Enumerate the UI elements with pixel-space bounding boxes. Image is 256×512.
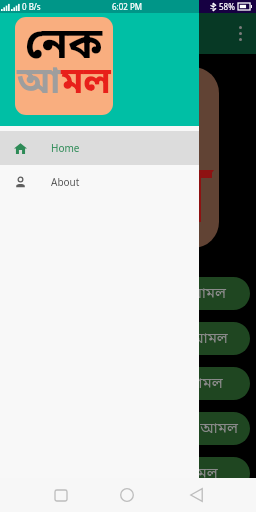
staticText: 6:02 PM <box>112 1 143 12</box>
button[interactable]: প্রতিদিনের প্রয়োজনীয় আমল <box>22 367 250 400</box>
staticText: রাতে ঘুমানোর আগের দোয়া আমল <box>34 419 238 439</box>
staticText: মল <box>61 60 111 108</box>
staticText: নেক <box>25 19 103 75</box>
button[interactable]: More options <box>232 25 248 41</box>
button[interactable]: Back <box>181 480 211 510</box>
button[interactable]: Home <box>112 480 142 510</box>
button[interactable]: নামাজের পরের দোয়া ও আমল <box>22 322 250 355</box>
button[interactable]: Home <box>0 131 199 165</box>
staticText: সকাল সন্ধ্যার জিকির ও আমল <box>47 284 226 304</box>
staticText: আ <box>17 60 61 108</box>
button[interactable]: পাঁচ ওয়াক্ত নামাজের আমল <box>22 457 250 490</box>
staticText: প্রতিদিনের প্রয়োজনীয় আমল <box>50 374 223 394</box>
button[interactable]: রাতে ঘুমানোর আগের দোয়া আমল <box>22 412 250 445</box>
staticText: About <box>51 175 80 189</box>
button[interactable]: About <box>0 165 199 199</box>
staticText: পাঁচ ওয়াক্ত নামাজের আমল <box>54 464 218 484</box>
staticText: Home <box>51 141 80 155</box>
button[interactable]: Recents <box>46 480 76 510</box>
staticText: নামাজের পরের দোয়া ও আমল <box>45 329 228 349</box>
staticText: 0 B/s <box>22 1 41 12</box>
button[interactable]: সকাল সন্ধ্যার জিকির ও আমল <box>22 277 250 310</box>
staticText: 58% <box>219 1 235 12</box>
